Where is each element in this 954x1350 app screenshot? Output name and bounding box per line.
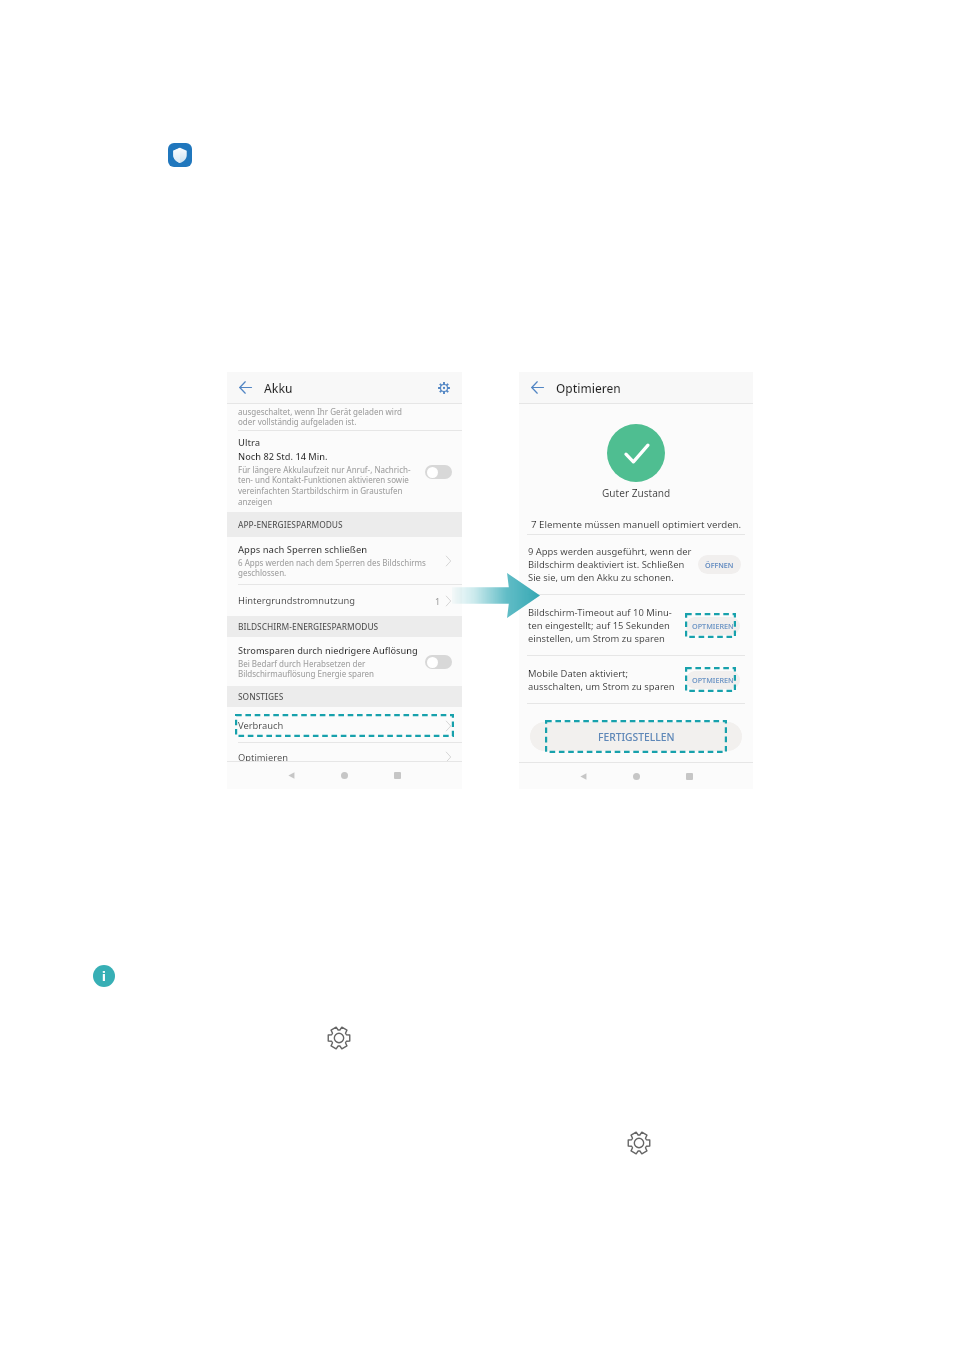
staticText: OPTMIEREN <box>692 675 734 685</box>
button[interactable]: OPTMIEREN <box>686 671 740 689</box>
staticText: 7 Elemente müssen manuell optimiert verd… <box>531 518 742 531</box>
button[interactable]: Home <box>610 773 663 780</box>
button[interactable]: Settings <box>436 380 452 396</box>
button[interactable]: Back <box>265 772 318 779</box>
button[interactable]: Optimieren <box>227 748 462 761</box>
button[interactable]: Back <box>237 379 254 396</box>
staticText: Guter Zustand <box>602 486 671 500</box>
staticText: Ultra <box>238 436 261 449</box>
staticText: 1 <box>435 595 441 607</box>
staticText: Optimieren <box>238 751 445 761</box>
button[interactable]: Recents <box>371 772 424 779</box>
staticText: SONSTIGES <box>238 691 284 702</box>
button[interactable]: FERTIGSTELLEN <box>530 722 742 751</box>
staticText: ÖFFNEN <box>705 560 734 570</box>
button[interactable]: Verbrauch <box>235 714 454 737</box>
staticText: Akku <box>264 380 293 396</box>
staticText: OPTMIEREN <box>692 621 734 631</box>
staticText: Apps nach Sperren schließen <box>238 543 368 556</box>
button[interactable]: Back <box>529 379 546 396</box>
staticText: 9 Apps werden ausgeführt, wenn der Bilds… <box>528 545 696 584</box>
staticText: Für längere Akkulaufzeit nur Anruf-, Nac… <box>238 464 411 508</box>
button[interactable]: Phone Manager <box>168 143 192 167</box>
button[interactable]: OPTMIEREN <box>686 617 740 635</box>
button[interactable]: Back <box>557 773 610 780</box>
staticText: Verbrauch <box>238 719 445 732</box>
button[interactable]: Toggle <box>425 655 452 669</box>
staticText: APP-ENERGIESPARMODUS <box>238 519 343 530</box>
staticText: 6 Apps werden nach dem Sperren des Bilds… <box>238 557 426 579</box>
button[interactable]: Hintergrundstromnutzung <box>227 585 462 616</box>
staticText: i <box>102 967 106 985</box>
button[interactable]: Recents <box>663 773 716 780</box>
button[interactable]: ÖFFNEN <box>698 555 741 574</box>
button[interactable]: Settings <box>627 1131 651 1155</box>
staticText: Hintergrundstromnutzung <box>238 594 435 607</box>
staticText: Stromsparen durch niedrigere Auflösung <box>238 644 418 657</box>
staticText: FERTIGSTELLEN <box>598 730 675 744</box>
button[interactable]: Home <box>318 772 371 779</box>
button[interactable]: Apps nach Sperren schließen <box>227 537 462 584</box>
staticText: Optimieren <box>556 380 621 396</box>
button[interactable]: Settings <box>327 1026 351 1050</box>
staticText: Noch 82 Std. 14 Min. <box>238 450 328 463</box>
button[interactable]: Toggle <box>425 465 452 479</box>
staticText: Mobile Daten aktiviert; ausschalten, um … <box>528 667 683 693</box>
button[interactable]: Info <box>93 965 115 987</box>
staticText: Bildschirm-Timeout auf 10 Minu- ten eing… <box>528 606 683 645</box>
staticText: ausgeschaltet, wenn Ihr Gerät geladen wi… <box>238 406 452 428</box>
staticText: BILDSCHIRM-ENERGIESPARMODUS <box>238 621 379 632</box>
staticText: Bei Bedarf durch Herabsetzen der Bildsch… <box>238 658 375 680</box>
